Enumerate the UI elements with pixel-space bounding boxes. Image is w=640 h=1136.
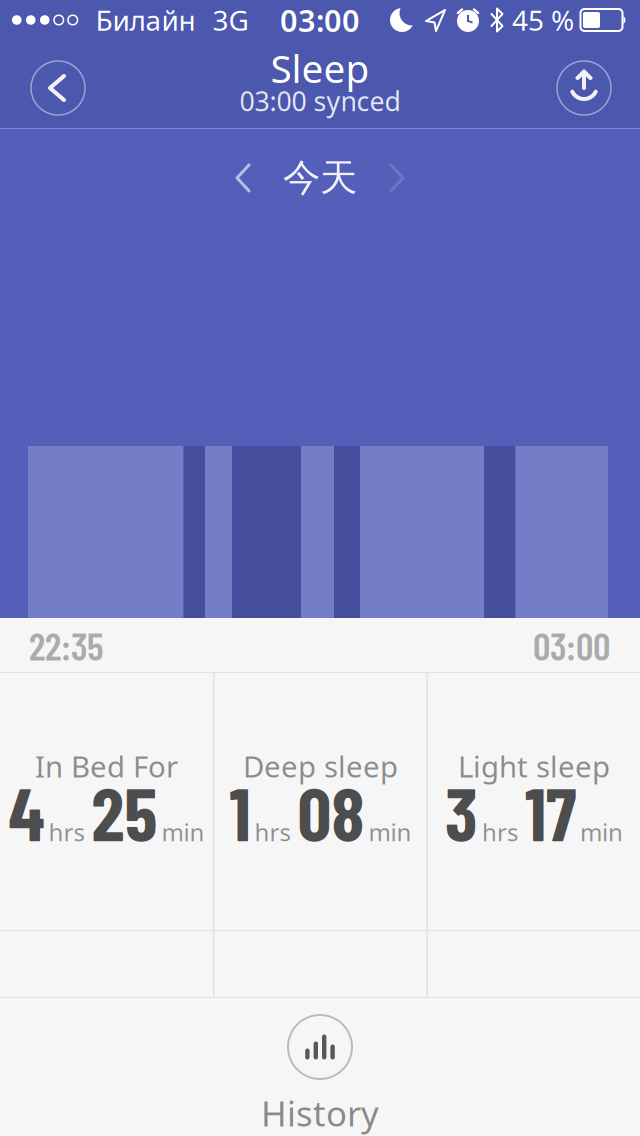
staticText: Light sleep (458, 746, 610, 785)
staticText: Sleep (270, 42, 369, 94)
staticText: min (368, 816, 411, 848)
staticText: hrs (482, 816, 518, 848)
staticText: 17 (525, 767, 576, 856)
staticText: 1 (229, 767, 250, 856)
button[interactable] (31, 61, 85, 115)
staticText: 3G (212, 1, 248, 39)
staticText: 25 (91, 767, 157, 856)
staticText: hrs (48, 816, 84, 848)
button[interactable] (235, 163, 251, 193)
staticText: 4 (8, 767, 44, 856)
staticText: Билайн (95, 1, 195, 39)
staticText: min (580, 816, 623, 848)
staticText: 03:00 (280, 0, 360, 40)
staticText: 45 % (512, 1, 574, 39)
staticText: In Bed For (35, 746, 178, 785)
staticText: Deep sleep (243, 746, 398, 785)
staticText: 08 (297, 767, 364, 856)
staticText: History (261, 1090, 379, 1136)
button[interactable] (557, 61, 611, 115)
staticText: 22:35 (29, 622, 104, 668)
staticText: hrs (254, 816, 290, 848)
button[interactable] (389, 163, 405, 193)
staticText: 03:00 synced (239, 83, 400, 119)
staticText: 3 (445, 767, 478, 856)
staticText: 今天 (283, 155, 357, 201)
button[interactable]: History (261, 998, 379, 1136)
staticText: 03:00 (533, 622, 610, 668)
staticText: min (161, 816, 204, 848)
